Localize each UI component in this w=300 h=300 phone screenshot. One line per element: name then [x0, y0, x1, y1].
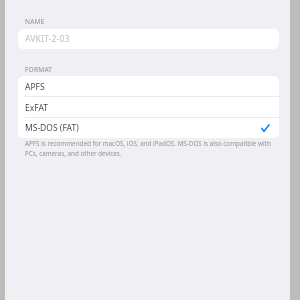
button[interactable]: ExFAT [18, 97, 279, 118]
button[interactable]: MS-DOS (FAT) [18, 118, 279, 138]
button[interactable]: Volume name text field [18, 29, 279, 49]
staticText: FORMAT [25, 65, 53, 74]
staticText: APFS [25, 81, 45, 93]
staticText: ExFAT [25, 102, 49, 114]
staticText: AVKIT-2-03 [25, 33, 70, 45]
staticText: APFS is recommended for macOS, iOS, and … [25, 139, 273, 158]
staticText: MS-DOS (FAT) [25, 122, 79, 134]
other: Selected [261, 124, 270, 132]
button[interactable]: APFS [18, 76, 279, 97]
staticText: NAME [25, 17, 45, 26]
